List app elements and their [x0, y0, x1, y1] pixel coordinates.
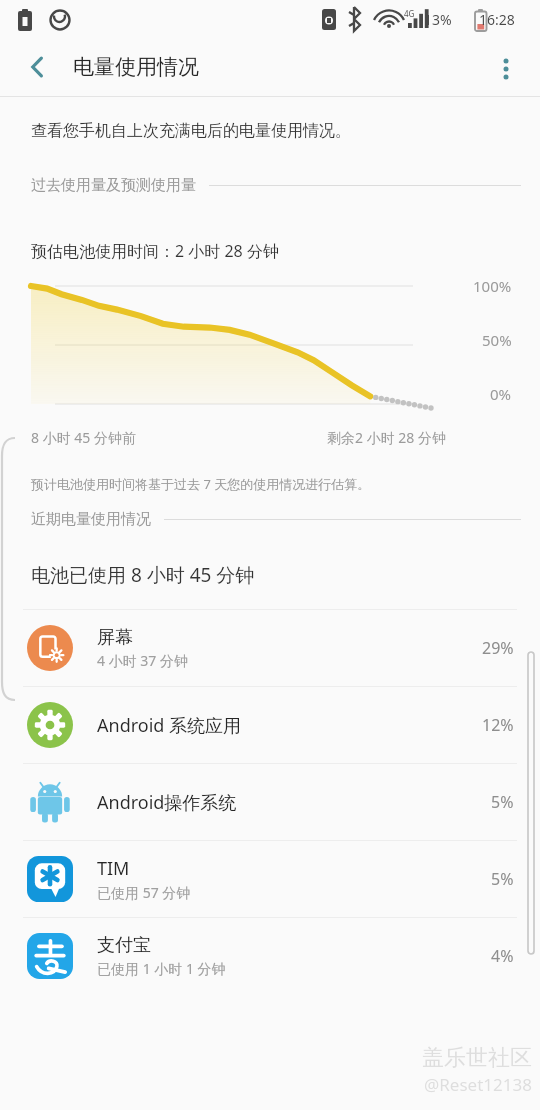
- staticText: 剩余2 小时 28 分钟: [327, 428, 446, 447]
- button[interactable]: TIM: [0, 841, 540, 917]
- staticText: 已使用 1 小时 1 分钟: [97, 959, 226, 978]
- staticText: TIM: [97, 856, 130, 881]
- button[interactable]: Android操作系统: [0, 764, 540, 840]
- button[interactable]: Android 系统应用: [0, 687, 540, 763]
- staticText: 支付宝: [97, 934, 151, 957]
- staticText: 29%: [482, 637, 514, 659]
- button[interactable]: 支付宝: [0, 918, 540, 994]
- staticText: 盖乐世社区: [422, 1044, 532, 1072]
- staticText: 电池已使用 8 小时 45 分钟: [31, 562, 255, 588]
- staticText: 4%: [491, 945, 514, 967]
- staticText: 电量使用情况: [73, 54, 199, 80]
- staticText: 50%: [482, 330, 512, 350]
- staticText: Android 系统应用: [97, 713, 242, 738]
- staticText: 5%: [491, 868, 514, 890]
- staticText: 查看您手机自上次充满电后的电量使用情况。: [31, 121, 351, 141]
- staticText: 12%: [482, 714, 514, 736]
- staticText: Android操作系统: [97, 790, 237, 815]
- staticText: 16:28: [479, 10, 515, 29]
- button[interactable]: Back: [14, 43, 62, 91]
- staticText: @Reset12138: [424, 1073, 532, 1096]
- staticText: 预估电池使用时间：2 小时 28 分钟: [31, 240, 279, 262]
- staticText: 13%: [424, 10, 452, 29]
- staticText: 屏幕: [97, 626, 133, 649]
- staticText: 4 小时 37 分钟: [97, 651, 188, 670]
- button[interactable]: More options: [482, 43, 530, 91]
- staticText: 近期电量使用情况: [31, 510, 151, 529]
- button[interactable]: 屏幕: [0, 610, 540, 686]
- staticText: 100%: [473, 276, 512, 296]
- staticText: 8 小时 45 分钟前: [31, 428, 136, 447]
- staticText: 4G: [404, 8, 415, 19]
- staticText: 5%: [491, 791, 514, 813]
- staticText: 0%: [490, 384, 512, 404]
- staticText: 已使用 57 分钟: [97, 883, 191, 902]
- staticText: 预计电池使用时间将基于过去 7 天您的使用情况进行估算。: [31, 475, 371, 493]
- staticText: 过去使用量及预测使用量: [31, 176, 196, 195]
